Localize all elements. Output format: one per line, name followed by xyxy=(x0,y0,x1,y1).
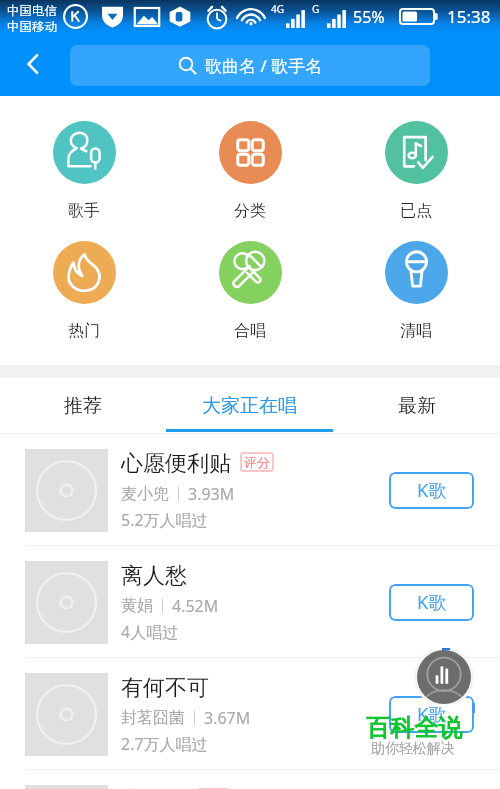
button[interactable]: 有何不可 xyxy=(0,658,500,770)
staticText: 黄娟 xyxy=(121,596,153,616)
button[interactable]: K歌 xyxy=(389,696,474,733)
staticText: 大家正在唱 xyxy=(202,394,297,418)
button[interactable]: 清唱 xyxy=(361,241,471,341)
staticText: 合唱 xyxy=(234,321,266,341)
staticText: 助你轻松解决 xyxy=(371,740,455,758)
staticText: K歌 xyxy=(417,478,447,503)
staticText: 封茗囧菌 xyxy=(121,708,185,728)
staticText: G xyxy=(312,2,320,16)
button[interactable]: 歌曲名 / 歌手名 xyxy=(70,45,430,86)
button[interactable]: 离人愁 xyxy=(0,546,500,658)
staticText: 歌手 xyxy=(68,201,100,221)
staticText: 中国移动 xyxy=(7,19,57,35)
staticText: 评分 xyxy=(244,454,270,470)
staticText: 麦小兜 xyxy=(121,484,169,504)
staticText: K歌 xyxy=(417,702,447,727)
button[interactable]: Mini player xyxy=(417,650,471,704)
staticText: 心愿便利贴 xyxy=(121,450,231,478)
button[interactable]: 青花瓷 xyxy=(0,770,500,789)
button[interactable]: 大家正在唱 xyxy=(166,378,333,433)
staticText: 已点 xyxy=(400,201,432,221)
staticText: 5.2万人唱过 xyxy=(121,509,208,531)
staticText: 3.67M xyxy=(204,707,251,729)
button[interactable]: 热门 xyxy=(29,241,139,341)
button[interactable]: 已点 xyxy=(361,121,471,221)
staticText: 分类 xyxy=(234,201,266,221)
staticText: 有何不可 xyxy=(121,674,209,702)
staticText: 4G xyxy=(271,2,284,16)
staticText: 3.93M xyxy=(188,483,235,505)
staticText: 中国电信 xyxy=(7,3,57,19)
staticText: 清唱 xyxy=(400,321,432,341)
staticText: 歌曲名 / 歌手名 xyxy=(205,54,323,77)
staticText: 4人唱过 xyxy=(121,621,179,643)
staticText: 最新 xyxy=(398,394,436,418)
staticText: 推荐 xyxy=(64,394,102,418)
button[interactable]: 最新 xyxy=(333,378,500,433)
staticText: 百科全说 xyxy=(366,713,462,743)
button[interactable]: Back xyxy=(10,41,56,87)
staticText: 55% xyxy=(353,6,385,28)
button[interactable]: 分类 xyxy=(195,121,305,221)
button[interactable]: 推荐 xyxy=(0,378,166,433)
staticText: 2.7万人唱过 xyxy=(121,733,208,755)
button[interactable]: 心愿便利贴 xyxy=(0,434,500,546)
button[interactable]: K歌 xyxy=(389,472,474,509)
staticText: 4.52M xyxy=(172,595,219,617)
button[interactable]: 歌手 xyxy=(29,121,139,221)
staticText: 热门 xyxy=(68,321,100,341)
button[interactable]: 合唱 xyxy=(195,241,305,341)
staticText: K歌 xyxy=(417,590,447,615)
button[interactable]: K歌 xyxy=(389,584,474,621)
staticText: 离人愁 xyxy=(121,562,187,590)
staticText: 15:38 xyxy=(447,5,491,28)
